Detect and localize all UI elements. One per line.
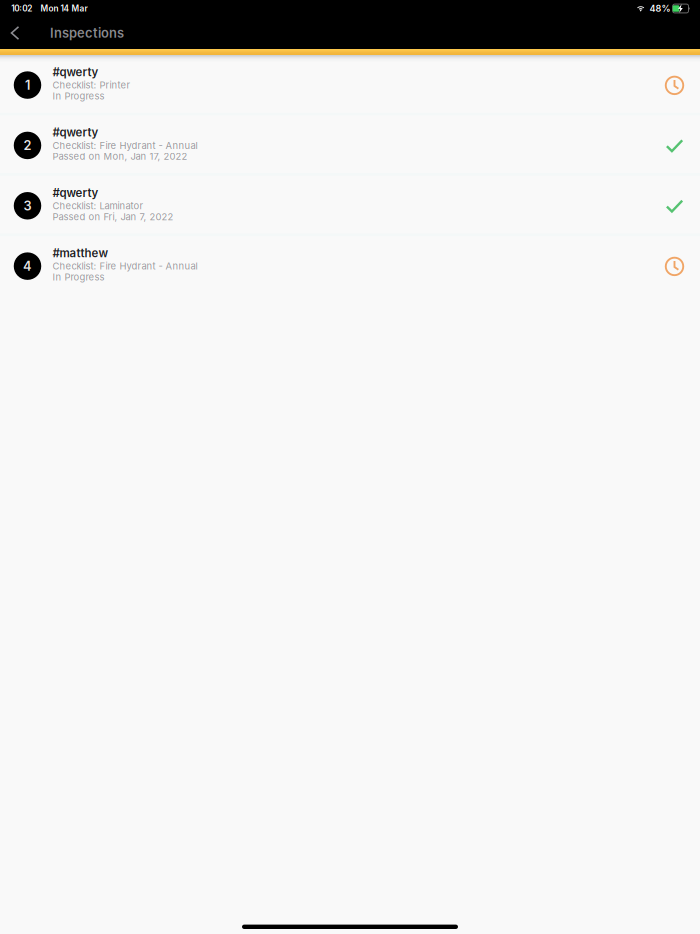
staticText: 48%	[649, 3, 670, 14]
button[interactable]: 3	[0, 176, 700, 233]
staticText: Passed on Mon, Jan 17, 2022	[52, 151, 187, 162]
staticText: 4	[23, 258, 32, 274]
staticText: 1	[25, 77, 30, 93]
button[interactable]: 4	[0, 236, 700, 294]
button[interactable]: 1	[0, 55, 700, 113]
staticText: 3	[23, 198, 31, 213]
staticText: #qwerty	[52, 125, 98, 139]
staticText: 2	[23, 138, 31, 153]
staticText: Inspections	[50, 25, 124, 41]
staticText: Checklist: Fire Hydrant - Annual	[52, 260, 197, 272]
staticText: #qwerty	[52, 186, 98, 200]
button[interactable]: Back	[0, 17, 30, 49]
staticText: Checklist: Printer	[52, 79, 130, 91]
staticText: In Progress	[52, 271, 104, 283]
staticText: Passed on Fri, Jan 7, 2022	[52, 211, 173, 222]
staticText: Mon 14 Mar	[40, 3, 87, 13]
staticText: Checklist: Fire Hydrant - Annual	[52, 140, 197, 151]
staticText: #matthew	[52, 246, 108, 260]
button[interactable]: 2	[0, 115, 700, 173]
staticText: In Progress	[52, 90, 104, 102]
staticText: #qwerty	[52, 65, 98, 79]
staticText: Checklist: Laminator	[52, 200, 143, 212]
staticText: 10:02	[11, 3, 32, 13]
